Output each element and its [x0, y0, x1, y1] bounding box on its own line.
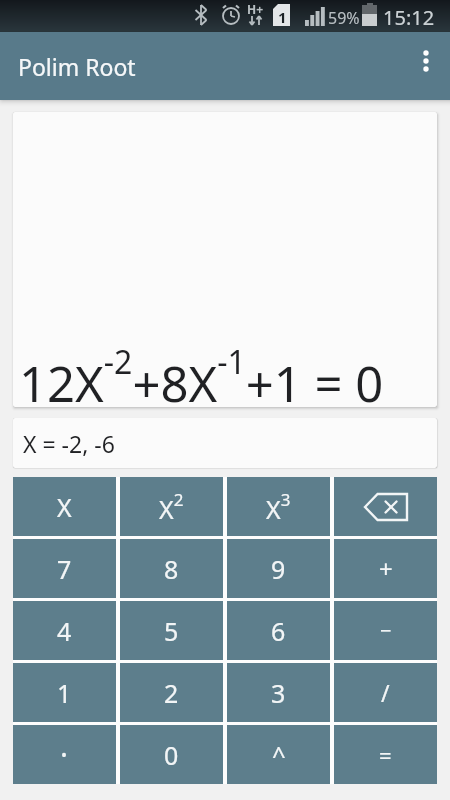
- staticText: 1: [278, 7, 287, 27]
- button[interactable]: +: [334, 539, 437, 598]
- button[interactable]: /: [334, 663, 437, 722]
- staticText: =: [379, 740, 392, 770]
- staticText: X = -2, -6: [23, 428, 115, 459]
- button[interactable]: X = -2, -6: [13, 418, 437, 468]
- staticText: 3: [271, 676, 286, 710]
- button[interactable]: 1: [13, 663, 116, 722]
- button[interactable]: 12X-2+8X-1+1 = 0: [13, 112, 437, 407]
- button[interactable]: 7: [13, 539, 116, 598]
- button[interactable]: −: [334, 601, 437, 660]
- button[interactable]: 4: [13, 601, 116, 660]
- staticText: ^: [272, 738, 286, 771]
- button[interactable]: 5: [120, 601, 223, 660]
- staticText: 0: [164, 738, 179, 772]
- staticText: H+: [247, 1, 264, 17]
- button[interactable]: =: [334, 725, 437, 784]
- staticText: X3: [266, 488, 291, 526]
- button[interactable]: 0: [120, 725, 223, 784]
- staticText: −: [380, 617, 392, 644]
- staticText: 9: [271, 552, 286, 586]
- staticText: 4: [57, 614, 72, 648]
- staticText: Polim Root: [18, 51, 136, 82]
- staticText: 15:12: [383, 4, 435, 31]
- staticText: +: [379, 552, 393, 585]
- button[interactable]: X2: [120, 477, 223, 536]
- button[interactable]: ^: [227, 725, 330, 784]
- button[interactable]: •: [13, 725, 116, 784]
- staticText: 7: [57, 552, 72, 586]
- button[interactable]: 8: [120, 539, 223, 598]
- button[interactable]: 9: [227, 539, 330, 598]
- staticText: 59%: [328, 7, 360, 29]
- button[interactable]: [402, 32, 450, 100]
- staticText: /: [381, 677, 390, 708]
- staticText: 12X-2+8X-1+1 = 0: [19, 340, 384, 407]
- staticText: •: [61, 744, 68, 766]
- staticText: 6: [271, 614, 286, 648]
- button[interactable]: X3: [227, 477, 330, 536]
- button[interactable]: 3: [227, 663, 330, 722]
- staticText: 2: [164, 676, 179, 710]
- staticText: 5: [164, 614, 179, 648]
- staticText: X2: [159, 488, 184, 526]
- staticText: X: [57, 490, 72, 524]
- button[interactable]: 2: [120, 663, 223, 722]
- staticText: 1: [57, 676, 72, 710]
- button[interactable]: 6: [227, 601, 330, 660]
- staticText: 8: [164, 552, 179, 586]
- button[interactable]: [334, 477, 437, 536]
- button[interactable]: X: [13, 477, 116, 536]
